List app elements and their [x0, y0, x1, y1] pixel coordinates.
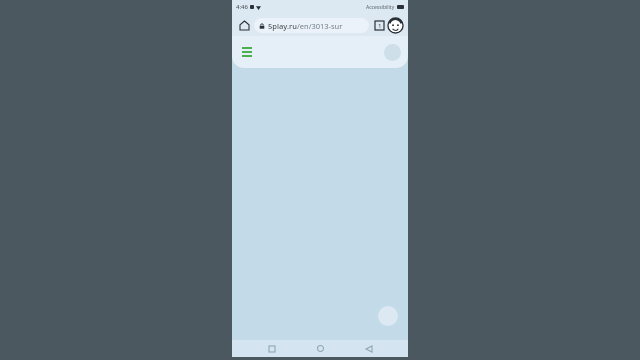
button[interactable]: Menu: [239, 44, 255, 60]
button[interactable]: 5play.ru: [254, 18, 369, 33]
staticText: 4:46: [236, 3, 248, 11]
button[interactable]: Tabs: [372, 18, 386, 32]
button[interactable]: Recent apps: [263, 340, 281, 357]
button[interactable]: Home: [236, 17, 252, 33]
button[interactable]: Back: [360, 340, 378, 357]
button[interactable]: Home: [311, 340, 329, 357]
staticText: 5play.ru: [268, 21, 297, 31]
button[interactable]: Account: [384, 44, 401, 61]
staticText: 1: [378, 22, 382, 30]
button[interactable]: Profile: [387, 17, 404, 34]
staticText: /en/3013-sur: [297, 21, 343, 31]
staticText: Accessibility: [366, 4, 395, 11]
button[interactable]: Scroll to top: [378, 306, 398, 326]
